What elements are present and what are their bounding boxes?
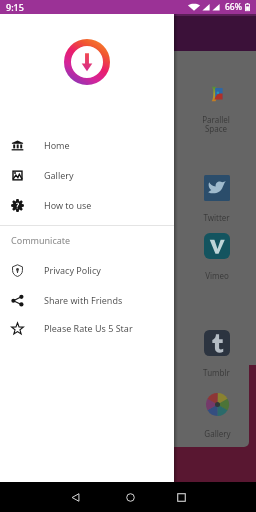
button[interactable]: Home <box>117 484 143 510</box>
button[interactable]: Gallery <box>0 161 174 189</box>
button[interactable]: Gallery <box>184 392 250 439</box>
staticText: 66% <box>225 1 242 13</box>
button[interactable]: How to use <box>0 191 174 219</box>
staticText: Twitter <box>203 212 230 223</box>
staticText: Gallery <box>44 169 74 181</box>
button[interactable]: Back <box>62 484 88 510</box>
staticText: Home <box>44 139 70 151</box>
button[interactable]: Tumblr <box>183 330 249 378</box>
staticText: Gallery <box>204 428 231 439</box>
staticText: 9:15 <box>6 1 24 13</box>
staticText: Vimeo <box>205 270 229 281</box>
button[interactable]: Twitter <box>183 175 249 223</box>
staticText: Communicate <box>11 234 71 246</box>
staticText: How to use <box>44 199 92 211</box>
button[interactable]: Parallel Space <box>183 85 249 135</box>
button[interactable]: Home <box>0 131 174 159</box>
staticText: Please Rate Us 5 Star <box>44 322 133 334</box>
staticText: Tumblr <box>203 367 230 378</box>
staticText: Privacy Policy <box>44 264 101 276</box>
staticText: Parallel Space <box>202 114 230 135</box>
button[interactable]: Please Rate Us 5 Star <box>0 314 174 342</box>
button[interactable]: Vimeo <box>184 233 250 281</box>
button[interactable]: Share with Friends <box>0 286 174 314</box>
button[interactable]: Privacy Policy <box>0 256 174 284</box>
button[interactable]: Recent apps <box>168 484 194 510</box>
staticText: Share with Friends <box>44 294 123 306</box>
